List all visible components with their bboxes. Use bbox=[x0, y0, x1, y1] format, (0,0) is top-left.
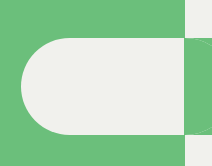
button[interactable]: App logo mark bbox=[0, 0, 212, 166]
